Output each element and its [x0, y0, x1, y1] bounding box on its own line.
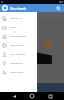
staticText: PROMOTIONS: [10, 34, 26, 37]
button[interactable]: PROMOTIONS: [0, 31, 37, 40]
button[interactable]: Menu: [2, 5, 8, 11]
staticText: ADDRESSES: [10, 61, 24, 64]
staticText: Sberbank: [10, 6, 27, 11]
staticText: TELEPHONE: [10, 70, 24, 73]
button[interactable]: TELEPHONE: [0, 67, 37, 76]
button[interactable]: ADDRESSES: [0, 58, 37, 67]
button[interactable]: OUR OFFICES: [0, 49, 37, 58]
button[interactable]: ABOUT US: [0, 13, 37, 22]
button[interactable]: Recents: [46, 92, 54, 100]
staticText: HOW TO PAY: [10, 43, 25, 46]
button[interactable]: Search: [54, 4, 62, 12]
button[interactable]: Home: [28, 92, 36, 100]
staticText: NEWS: [10, 25, 17, 28]
button[interactable]: NEWS: [0, 22, 37, 31]
staticText: OUR OFFICES: [10, 52, 26, 55]
staticText: ABOUT US: [10, 16, 22, 19]
button[interactable]: Back: [10, 92, 18, 100]
button[interactable]: HOW TO PAY: [0, 40, 37, 49]
